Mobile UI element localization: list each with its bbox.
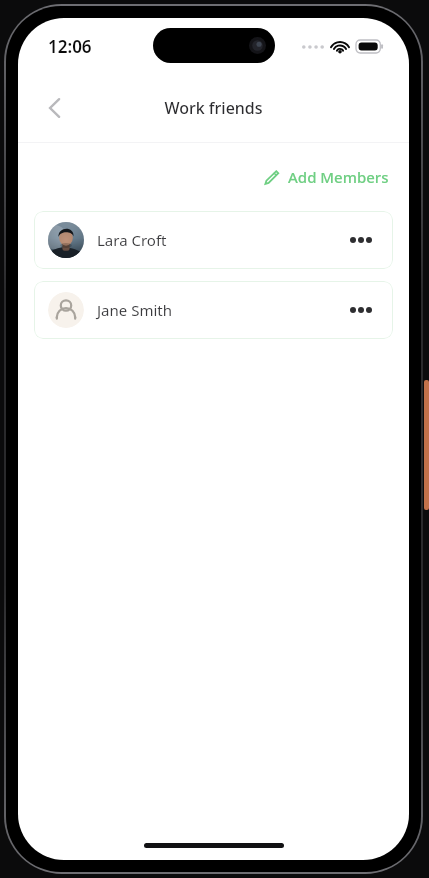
staticText: Lara Croft [97,230,167,250]
button[interactable]: Add Members [257,161,395,193]
button[interactable]: Jane Smith [34,281,393,339]
staticText: Add Members [288,167,389,187]
staticText: Jane Smith [97,300,172,320]
button[interactable]: More options for Jane Smith [343,292,379,328]
button[interactable]: More options for Lara Croft [343,222,379,258]
button[interactable]: Lara Croft [34,211,393,269]
staticText: 12:06 [48,35,92,58]
button[interactable]: Back [32,88,76,128]
staticText: Work friends [18,97,409,119]
